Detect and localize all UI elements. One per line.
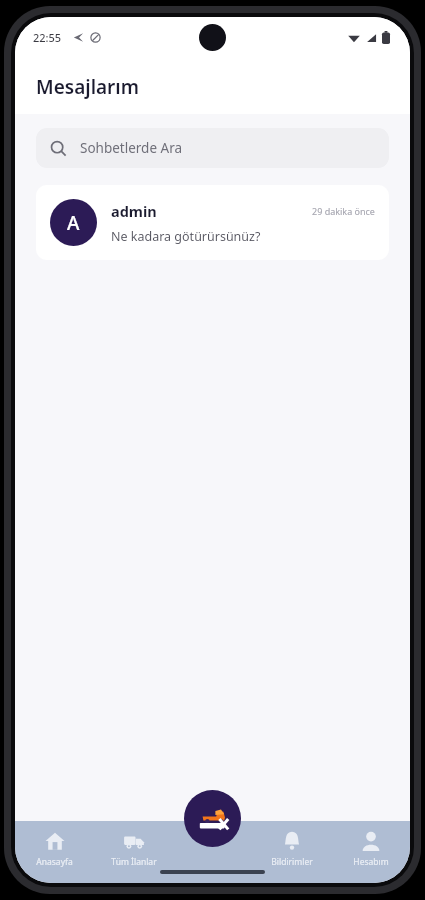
- button[interactable]: NakliyatX ana menü: [184, 790, 241, 847]
- staticText: Anasayfa: [36, 856, 73, 868]
- button[interactable]: A: [36, 185, 389, 260]
- staticText: Hesabım: [353, 856, 389, 868]
- staticText: 29 dakika önce: [312, 205, 375, 217]
- staticText: Tüm İlanlar: [111, 856, 157, 868]
- button[interactable]: Anasayfa: [15, 821, 94, 883]
- button[interactable]: Bildirimler: [252, 821, 331, 883]
- button[interactable]: Sohbetlerde Ara: [36, 128, 389, 168]
- button[interactable]: Hesabım: [331, 821, 410, 883]
- staticText: Ne kadara götürürsünüz?: [111, 228, 261, 245]
- staticText: admin: [111, 201, 312, 221]
- staticText: 22:55: [33, 30, 62, 45]
- button[interactable]: Tüm İlanlar: [94, 821, 173, 883]
- staticText: A: [67, 210, 80, 236]
- staticText: Mesajlarım: [36, 74, 139, 100]
- staticText: Bildirimler: [271, 856, 313, 868]
- staticText: Sohbetlerde Ara: [80, 139, 183, 157]
